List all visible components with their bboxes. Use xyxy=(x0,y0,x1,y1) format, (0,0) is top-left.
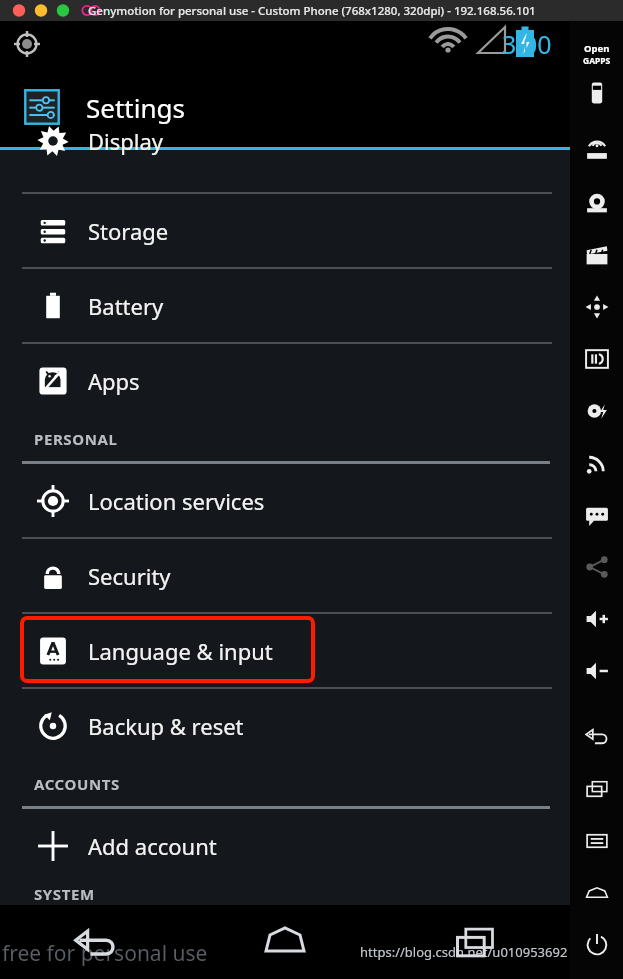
staticText: Apps xyxy=(88,366,140,396)
button[interactable]: Video xyxy=(575,233,619,277)
button[interactable]: Backup & reset xyxy=(0,689,570,762)
button[interactable]: Recents xyxy=(575,767,619,811)
button[interactable]: Camera xyxy=(575,181,619,225)
button[interactable]: Back xyxy=(575,715,619,759)
button[interactable]: Phone xyxy=(575,71,619,115)
staticText: SYSTEM xyxy=(34,884,95,904)
staticText: Storage xyxy=(88,216,169,246)
button[interactable]: Volume up xyxy=(575,597,619,641)
button[interactable]: Language & input xyxy=(0,614,570,687)
button[interactable]: GPS xyxy=(575,129,619,173)
button[interactable]: Identifiers xyxy=(575,337,619,381)
button[interactable]: Location services xyxy=(0,464,570,537)
staticText: Language & input xyxy=(88,636,273,666)
button[interactable]: D-Pad xyxy=(575,285,619,329)
staticText: Settings xyxy=(86,90,185,125)
button[interactable]: Home xyxy=(190,905,380,979)
button[interactable]: Battery xyxy=(0,269,570,342)
button[interactable]: Network xyxy=(575,441,619,485)
staticText: Security xyxy=(88,561,171,591)
button[interactable]: Recent apps xyxy=(380,905,570,979)
button[interactable]: OpenGApps xyxy=(572,37,622,71)
staticText: 3:00 xyxy=(502,27,552,61)
staticText: ACCOUNTS xyxy=(34,774,120,794)
staticText: https://blog.csdn.net/u010953692 xyxy=(360,943,568,961)
button[interactable]: Power xyxy=(575,923,619,967)
button[interactable]: Security xyxy=(0,539,570,612)
button[interactable]: Display xyxy=(0,120,570,162)
button[interactable]: Add account xyxy=(0,809,570,882)
staticText: GAPPS xyxy=(583,55,611,67)
staticText: Display xyxy=(88,126,164,156)
staticText: Backup & reset xyxy=(88,711,244,741)
button[interactable]: Menu xyxy=(575,819,619,863)
button[interactable]: Apps xyxy=(0,344,570,417)
button[interactable]: Home xyxy=(575,871,619,915)
button[interactable]: Settings xyxy=(0,67,570,147)
button[interactable]: Disk IO xyxy=(575,389,619,433)
button[interactable]: Volume down xyxy=(575,649,619,693)
button[interactable]: More xyxy=(575,493,619,537)
staticText: Battery xyxy=(88,291,164,321)
button[interactable]: Share xyxy=(575,545,619,589)
staticText: Location services xyxy=(88,486,265,516)
button[interactable]: Back xyxy=(0,905,190,979)
staticText: PERSONAL xyxy=(34,429,118,449)
staticText: free for personal use xyxy=(2,939,208,968)
staticText: Open xyxy=(584,42,610,55)
staticText: Genymotion for personal use - Custom Pho… xyxy=(88,3,536,19)
staticText: Add account xyxy=(88,831,217,861)
button[interactable]: Display xyxy=(0,150,570,192)
button[interactable]: Storage xyxy=(0,194,570,267)
